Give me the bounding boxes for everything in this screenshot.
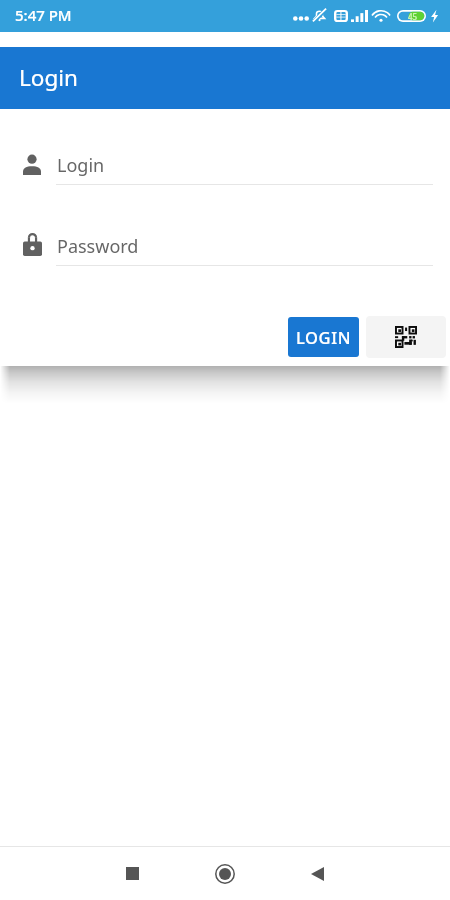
button[interactable]: Recent apps	[94, 847, 170, 900]
button[interactable]: Password	[0, 228, 450, 274]
button[interactable]: Login	[0, 147, 450, 193]
staticText: 5:47 PM	[15, 5, 72, 25]
button[interactable]: Back	[279, 847, 355, 900]
staticText: Password	[57, 234, 139, 259]
button[interactable]: LOGIN	[288, 317, 359, 357]
staticText: Login	[57, 153, 105, 178]
staticText: Login	[19, 62, 78, 93]
button[interactable]: Scan QR code	[366, 316, 446, 358]
staticText: LOGIN	[296, 326, 352, 348]
staticText: 45	[408, 11, 418, 22]
button[interactable]: Home	[187, 847, 263, 900]
